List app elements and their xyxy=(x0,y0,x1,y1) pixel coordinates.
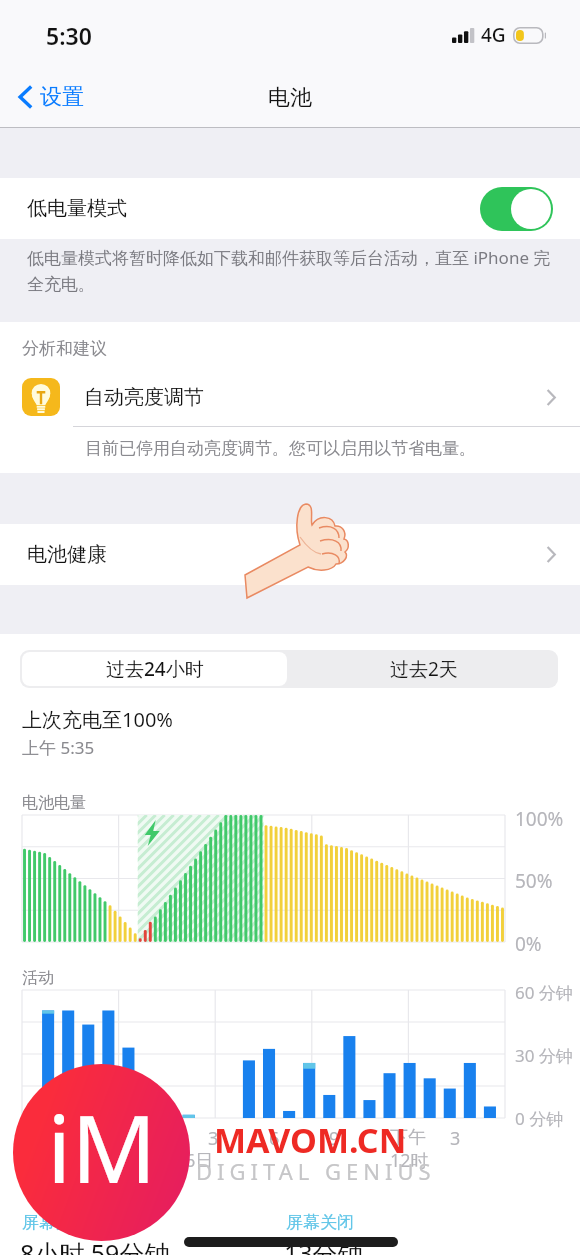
staticText: iM xyxy=(47,1083,157,1211)
button[interactable]: 设置 xyxy=(18,83,84,111)
staticText: 设置 xyxy=(40,83,84,111)
button[interactable]: 过去24小时 xyxy=(22,652,287,686)
staticText: MAVOM.CN xyxy=(214,1117,407,1163)
staticText: 自动亮度调节 xyxy=(84,385,204,410)
staticText: 12时 xyxy=(390,1148,429,1173)
staticText: 0% xyxy=(515,931,542,957)
staticText: 分析和建议 xyxy=(22,338,107,359)
staticText: 过去24小时 xyxy=(106,656,204,682)
staticText: 4G xyxy=(481,22,506,48)
staticText: DIGITAL GENIUS xyxy=(196,1156,436,1186)
staticText: 60 分钟 xyxy=(515,981,573,1004)
button[interactable]: 低电量模式开关 xyxy=(480,187,553,231)
staticText: 电池健康 xyxy=(27,542,107,567)
staticText: 电池电量 xyxy=(22,793,86,813)
staticText: 上次充电至100% xyxy=(22,706,173,733)
staticText: 过去2天 xyxy=(390,656,458,682)
staticText: 0 分钟 xyxy=(515,1107,564,1130)
staticText: 6 xyxy=(269,1126,280,1151)
staticText: 低电量模式 xyxy=(27,196,127,221)
staticText: 3 xyxy=(450,1126,461,1151)
staticText: 屏幕开启 xyxy=(22,1212,90,1233)
button[interactable]: 低电量模式 xyxy=(0,178,580,239)
staticText: 活动 xyxy=(22,968,54,988)
button[interactable]: 自动亮度调节 xyxy=(0,368,580,426)
staticText: 5:30 xyxy=(46,20,92,51)
staticText: 3 xyxy=(208,1126,219,1151)
staticText: 100% xyxy=(515,806,564,832)
staticText: 9 xyxy=(329,1126,340,1151)
staticText: 13分钟 xyxy=(284,1236,363,1255)
staticText: 下午 xyxy=(390,1126,426,1149)
staticText: 30 分钟 xyxy=(515,1044,573,1067)
staticText: 8小时 59分钟 xyxy=(20,1236,170,1255)
button[interactable]: 过去2天 xyxy=(289,650,558,688)
staticText: 屏幕关闭 xyxy=(286,1212,354,1233)
staticText: 6日 xyxy=(185,1148,214,1173)
button[interactable]: 电池健康 xyxy=(0,524,580,585)
staticText: 上午 5:35 xyxy=(22,736,95,759)
staticText: 50% xyxy=(515,868,553,894)
staticText: 目前已停用自动亮度调节。您可以启用以节省电量。 xyxy=(85,438,476,459)
staticText: 电池 xyxy=(268,84,312,112)
staticText: 低电量模式将暂时降低如下载和邮件获取等后台活动，直至 iPhone 完全充电。 xyxy=(27,246,555,295)
